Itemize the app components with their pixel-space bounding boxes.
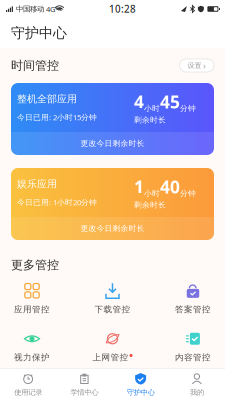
staticText: 娱乐应用 xyxy=(17,178,57,190)
staticText: 剩余时长 xyxy=(134,200,166,210)
staticText: › xyxy=(203,60,206,71)
staticText: 小时 xyxy=(144,104,160,113)
button[interactable]: 使用记录 xyxy=(0,369,56,400)
staticText: 学情中心 xyxy=(70,388,98,397)
button[interactable]: 娱乐应用 xyxy=(11,168,214,240)
staticText: 今日已用: 1小时20分钟 xyxy=(17,197,97,207)
staticText: 40 xyxy=(160,175,180,198)
staticText: 中国移动 xyxy=(14,4,46,14)
staticText: 时间管控 xyxy=(11,58,59,73)
button[interactable]: 内容管控 xyxy=(171,332,215,362)
staticText: 剩余时长 xyxy=(134,115,166,125)
staticText: 小时 xyxy=(144,189,160,198)
staticText: 守护中心 xyxy=(127,388,155,397)
staticText: 应用管控 xyxy=(14,304,50,315)
staticText: 设置 xyxy=(187,61,201,70)
staticText: 下载管控 xyxy=(94,304,130,315)
staticText: 45 xyxy=(160,90,180,113)
staticText: 4 xyxy=(134,90,144,113)
button[interactable]: 整机全部应用 xyxy=(11,83,214,155)
staticText: 今日已用: 2小时15分钟 xyxy=(17,112,97,122)
staticText: 整机全部应用 xyxy=(17,93,77,105)
button[interactable]: 上网管控 xyxy=(90,332,134,362)
staticText: 分钟 xyxy=(180,189,196,198)
staticText: 更改今日剩余时长 xyxy=(80,139,144,148)
staticText: 守护中心 xyxy=(11,24,67,42)
staticText: 分钟 xyxy=(180,104,196,113)
button[interactable]: 视力保护 xyxy=(10,332,54,362)
button[interactable]: 设置 xyxy=(179,59,214,72)
button[interactable]: 我的 xyxy=(169,369,225,400)
staticText: 视力保护 xyxy=(14,352,50,363)
staticText: 上网管控 xyxy=(92,352,128,363)
staticText: 4G xyxy=(46,4,55,14)
staticText: 答案管控 xyxy=(175,304,211,315)
button[interactable]: 应用管控 xyxy=(10,284,54,314)
staticText: 内容管控 xyxy=(175,352,211,363)
button[interactable]: 守护中心 xyxy=(112,369,169,400)
button[interactable]: 答案管控 xyxy=(171,284,215,314)
staticText: 我的 xyxy=(190,388,204,397)
staticText: 更改今日剩余时长 xyxy=(80,224,144,233)
button[interactable]: 学情中心 xyxy=(56,369,112,400)
staticText: 10:28 xyxy=(109,2,136,15)
staticText: 1 xyxy=(134,175,144,198)
staticText: 使用记录 xyxy=(14,388,42,397)
button[interactable]: 下载管控 xyxy=(90,284,134,314)
staticText: 更多管控 xyxy=(11,258,59,272)
